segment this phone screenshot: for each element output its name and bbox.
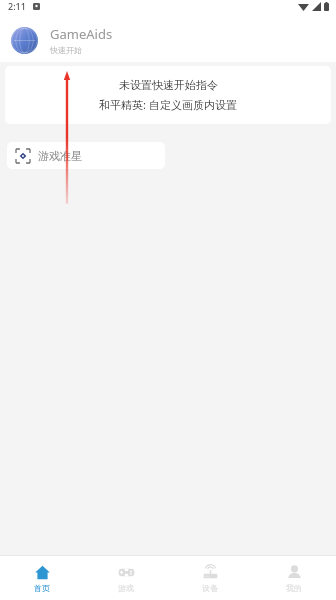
staticText: 我的: [286, 583, 302, 593]
button[interactable]: 游戏准星: [7, 142, 165, 169]
staticText: 游戏准星: [38, 149, 82, 163]
staticText: 快速开始: [50, 45, 82, 55]
button[interactable]: 我的: [252, 556, 336, 600]
button[interactable]: 未设置快速开始指令: [5, 66, 331, 124]
other: 游戏准星: [16, 149, 30, 163]
button[interactable]: 设备: [168, 556, 252, 600]
button[interactable]: 首页: [0, 556, 84, 600]
staticText: 和平精英: 自定义画质内设置: [99, 97, 237, 112]
button[interactable]: GameAids: [0, 18, 336, 62]
staticText: 首页: [34, 583, 50, 593]
staticText: 2:11: [8, 0, 26, 12]
staticText: GameAids: [50, 25, 113, 43]
staticText: 游戏: [118, 583, 134, 593]
button[interactable]: 游戏: [84, 556, 168, 600]
staticText: 未设置快速开始指令: [119, 78, 218, 92]
staticText: 设备: [202, 583, 218, 593]
